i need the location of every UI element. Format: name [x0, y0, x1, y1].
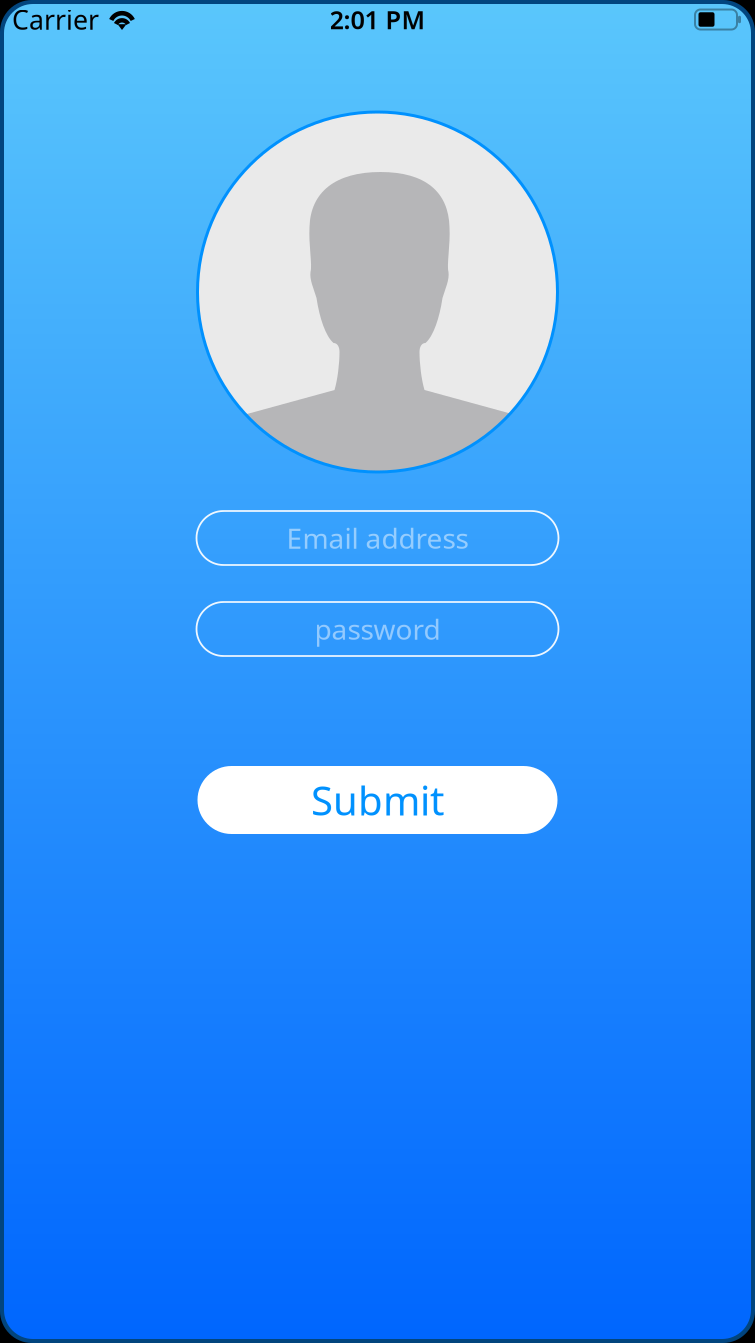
button[interactable]: Email address	[196, 511, 558, 565]
staticText: password	[314, 610, 440, 648]
button[interactable]: password	[196, 602, 558, 656]
staticText: 2:01 PM	[329, 3, 425, 36]
button[interactable]: Profile photo	[197, 112, 557, 472]
staticText: Submit	[311, 773, 444, 826]
button[interactable]: Submit	[197, 766, 557, 834]
staticText: Carrier	[12, 2, 99, 37]
staticText: Email address	[286, 519, 468, 557]
